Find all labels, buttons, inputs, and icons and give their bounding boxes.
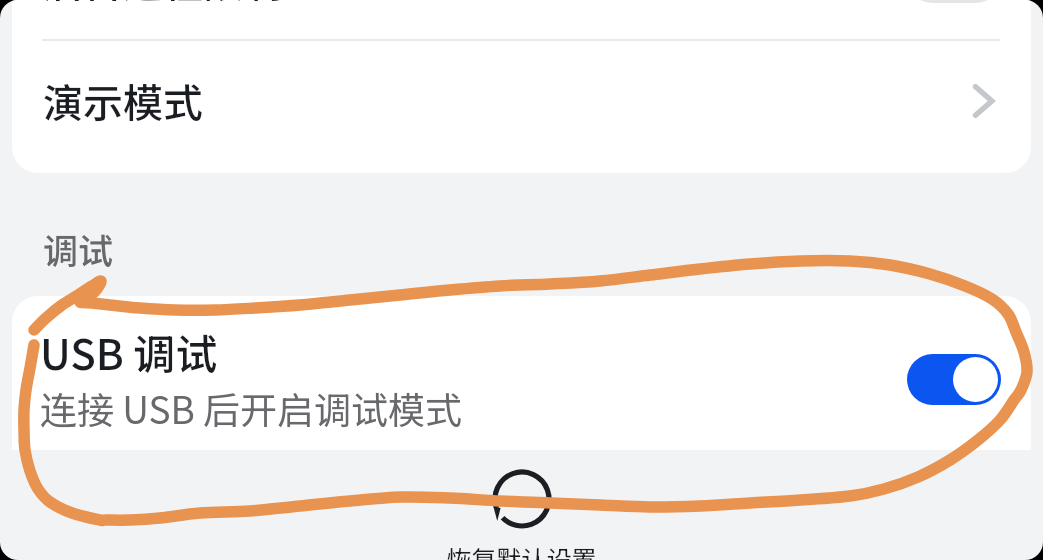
staticText: USB 调试	[40, 321, 218, 382]
button[interactable]: 演示模式	[12, 41, 1031, 173]
staticText: 演示模式	[43, 72, 203, 130]
staticText: 调试	[43, 223, 114, 274]
button[interactable]: Developer options toggle	[907, 0, 1001, 3]
staticText: 后台进程限制	[43, 0, 283, 10]
staticText: 恢复默认设置	[446, 540, 597, 560]
button[interactable]: 恢复默认设置	[421, 470, 621, 560]
button[interactable]: USB debugging toggle	[907, 354, 1001, 405]
button[interactable]: 后台进程限制	[12, 0, 1031, 38]
button[interactable]: USB 调试	[12, 296, 1031, 450]
staticText: 连接 USB 后开启调试模式	[40, 381, 463, 435]
